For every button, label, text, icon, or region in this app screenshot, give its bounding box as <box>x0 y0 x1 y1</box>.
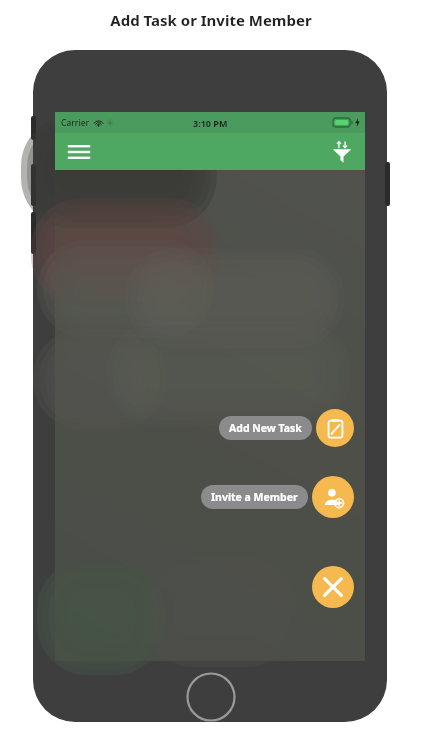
button[interactable]: Close menu <box>312 566 354 608</box>
button[interactable]: Filter and sort <box>327 137 357 167</box>
button[interactable]: Add New Task <box>316 409 354 447</box>
staticText: Carrier <box>61 117 90 129</box>
button[interactable]: Invite a Member <box>312 476 354 518</box>
button[interactable]: Open navigation menu <box>64 137 94 167</box>
button[interactable]: Invite a Member <box>201 485 308 509</box>
button[interactable]: Add New Task <box>219 416 312 440</box>
staticText: Add Task or Invite Member <box>110 10 312 30</box>
staticText: Add New Task <box>229 421 302 435</box>
staticText: Invite a Member <box>211 490 298 504</box>
staticText: 3:10 PM <box>193 117 228 129</box>
